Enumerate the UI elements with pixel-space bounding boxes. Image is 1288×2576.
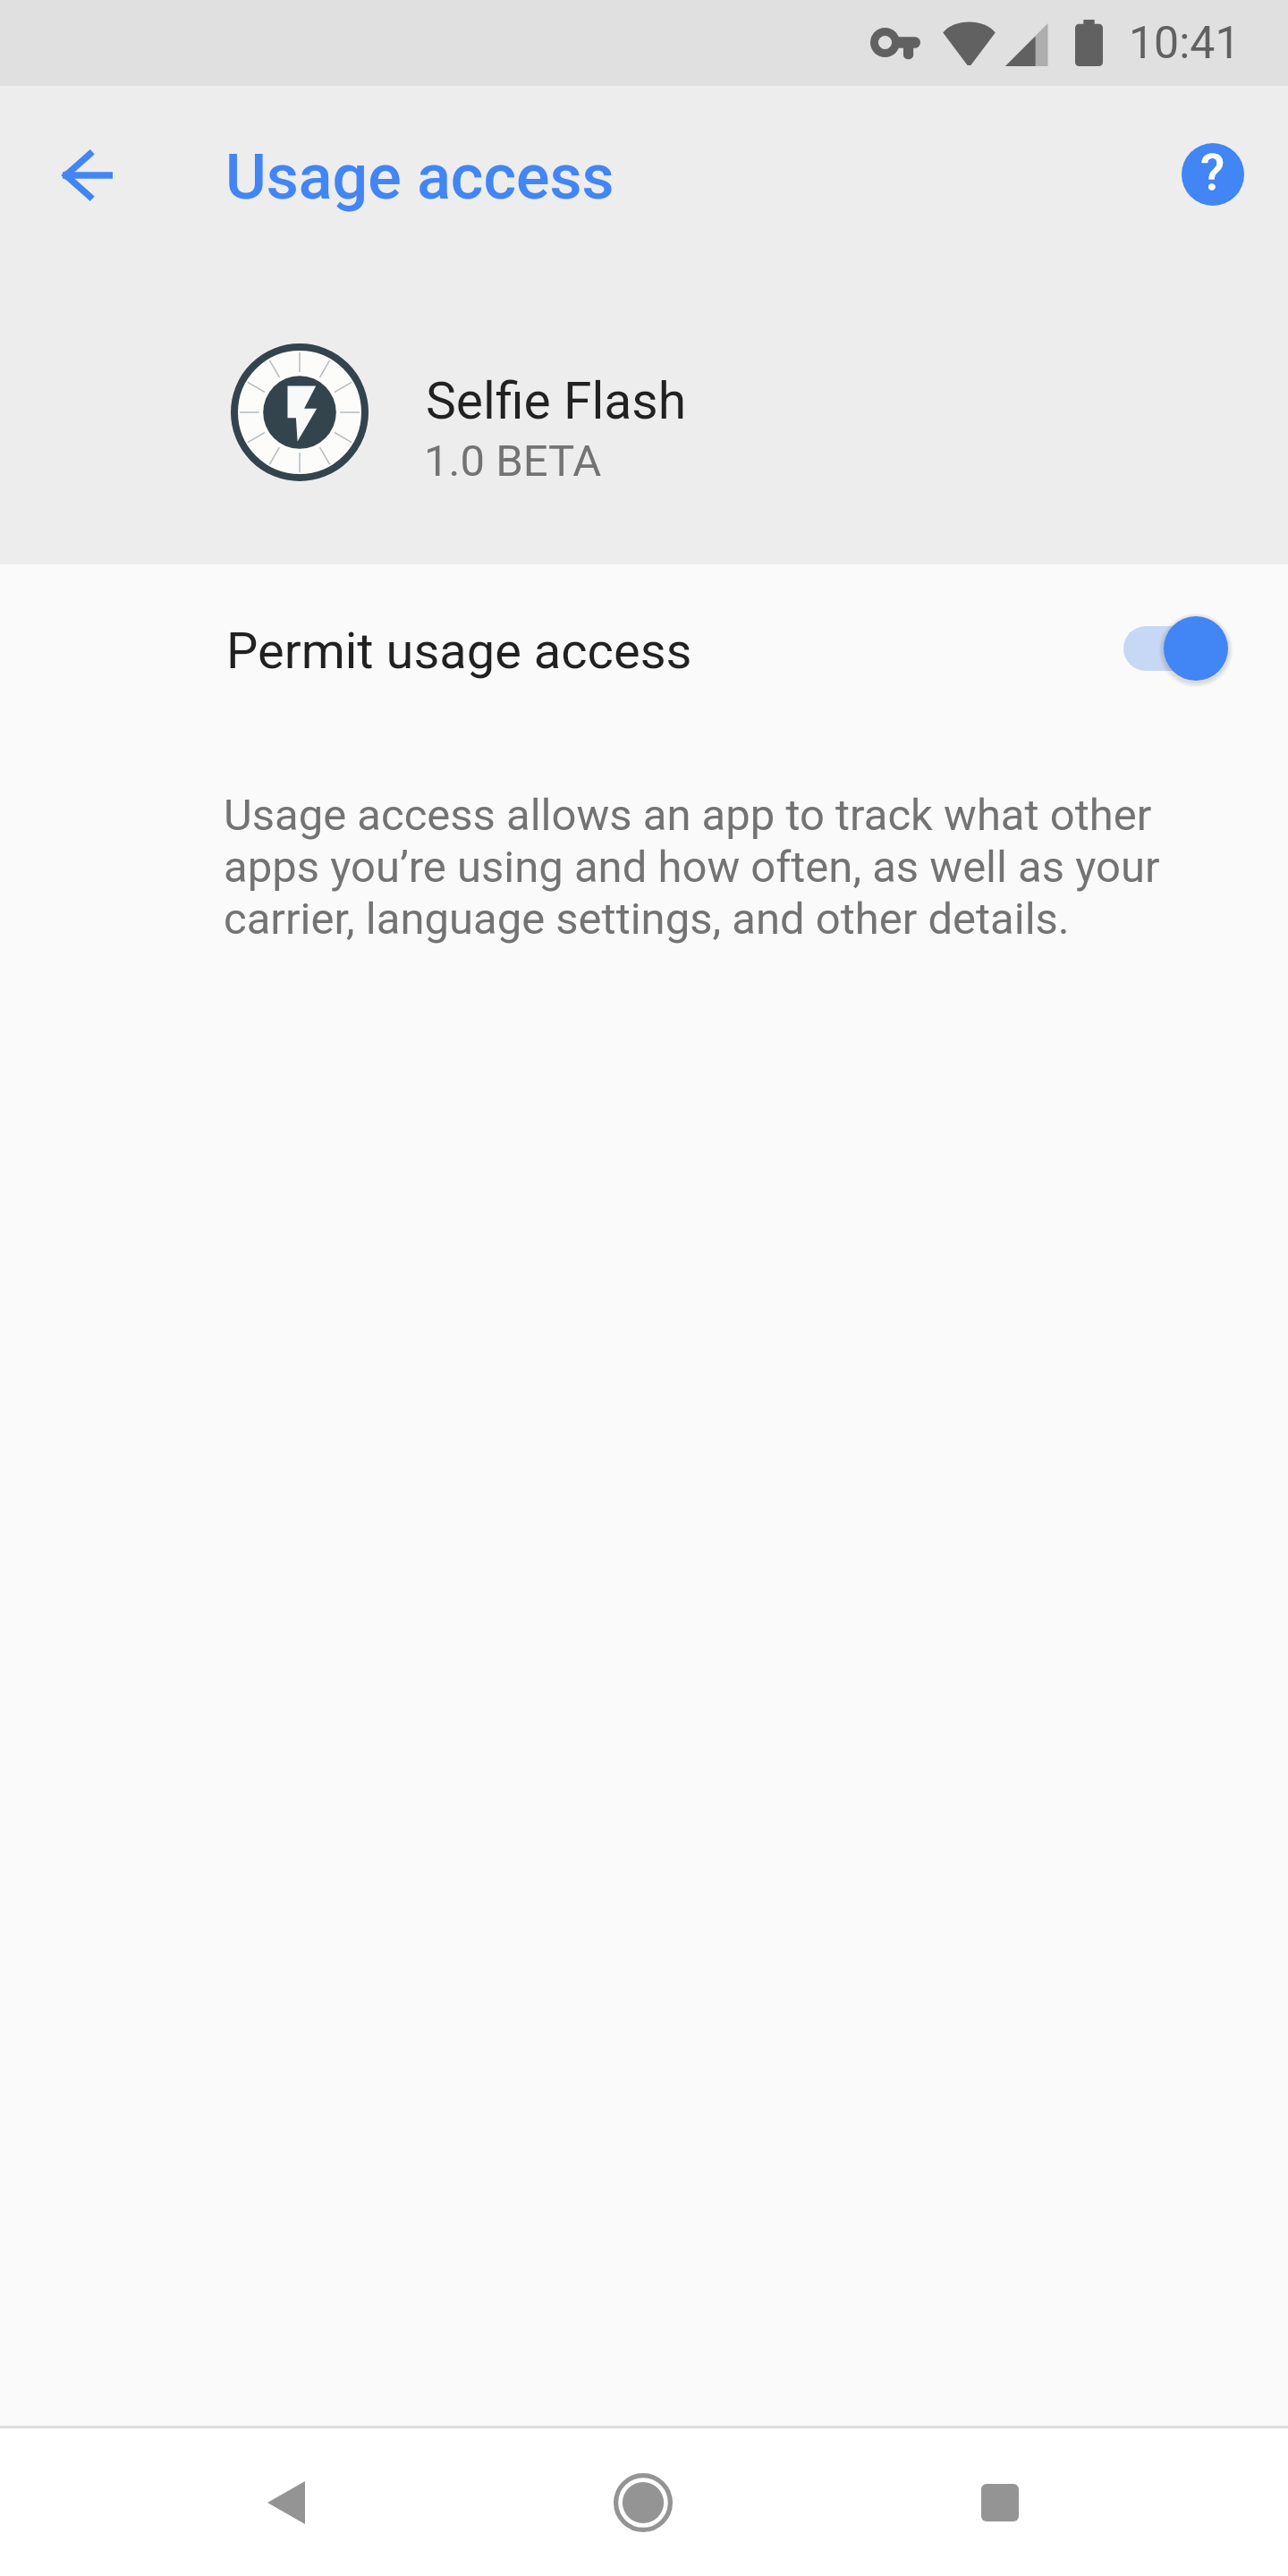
staticText: 10:41: [1129, 17, 1241, 70]
staticText: ?: [1200, 143, 1225, 202]
button[interactable]: Home: [589, 2449, 697, 2556]
button[interactable]: Selfie Flash: [0, 317, 1288, 509]
staticText: Permit usage access: [226, 622, 692, 681]
staticText: 1.0 BETA: [424, 436, 602, 487]
staticText: Usage access allows an app to track what…: [224, 789, 1199, 945]
staticText: Usage access: [225, 140, 614, 214]
button[interactable]: Permit usage access: [0, 566, 1288, 732]
button[interactable]: Back: [233, 2449, 340, 2556]
staticText: Selfie Flash: [426, 371, 687, 431]
button[interactable]: Navigate up: [30, 118, 145, 233]
button[interactable]: Recent apps: [946, 2449, 1054, 2556]
button[interactable]: Help: [1154, 115, 1272, 233]
